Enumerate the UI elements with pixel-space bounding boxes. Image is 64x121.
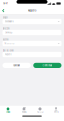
button[interactable]: Perfil	[48, 107, 64, 113]
staticText: Cancelar	[13, 64, 20, 67]
staticText: Destino	[2, 39, 8, 41]
staticText: Guadalajara	[4, 20, 13, 23]
staticText: Perfil	[54, 111, 58, 113]
button[interactable]: Inicio	[0, 107, 16, 113]
button[interactable]: Paquete	[2, 52, 61, 57]
staticText: Dirección	[2, 28, 9, 30]
button[interactable]: Back	[0, 7, 6, 14]
button[interactable]: Cancelar	[2, 63, 31, 68]
staticText: Calle Hidalgo	[4, 31, 12, 34]
staticText: Inicio	[6, 111, 10, 113]
staticText: 9:41	[3, 2, 8, 5]
button[interactable]: Calle Hidalgo	[2, 30, 61, 35]
staticText: Envíos	[21, 111, 26, 113]
staticText: Monterrey	[4, 42, 14, 45]
staticText: Registro	[28, 9, 36, 12]
button[interactable]: Guadalajara	[2, 19, 61, 24]
button[interactable]: Historial	[32, 107, 48, 113]
staticText: Historial	[37, 111, 43, 113]
staticText: Origen	[2, 17, 7, 19]
button[interactable]: Monterrey	[2, 41, 61, 46]
button[interactable]: Envíos	[16, 107, 32, 113]
button[interactable]: Continuar	[33, 63, 61, 68]
staticText: Paquete	[4, 53, 11, 56]
staticText: Continuar	[42, 64, 52, 67]
staticText: Tipo de envío	[2, 50, 13, 52]
